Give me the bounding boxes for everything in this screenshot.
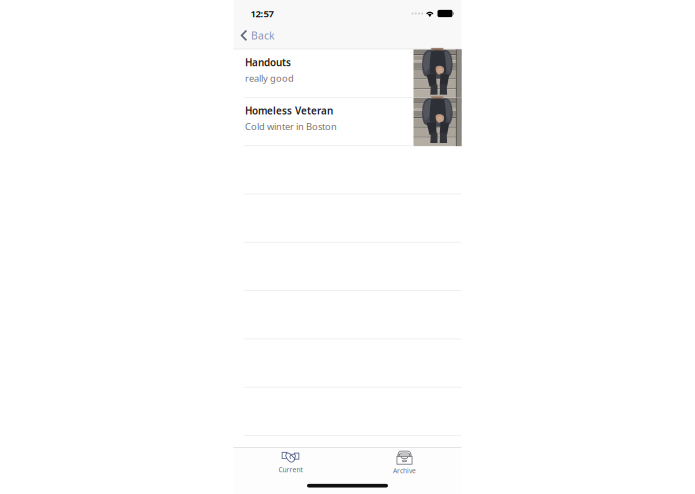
button[interactable]: Archive (347, 451, 461, 475)
button[interactable]: Current (233, 451, 347, 475)
staticText: really good (245, 72, 294, 84)
staticText: Homeless Veteran (245, 104, 333, 117)
button[interactable]: Homeless Veteran (233, 98, 461, 146)
staticText: 12:57 (250, 7, 273, 20)
staticText: Cold winter in Boston (245, 120, 337, 133)
staticText: Back (251, 28, 275, 42)
staticText: Handouts (245, 56, 291, 69)
button[interactable]: Back (233, 22, 283, 49)
staticText: Current (278, 465, 302, 474)
staticText: Archive (393, 466, 416, 475)
button[interactable]: Handouts (233, 49, 461, 98)
